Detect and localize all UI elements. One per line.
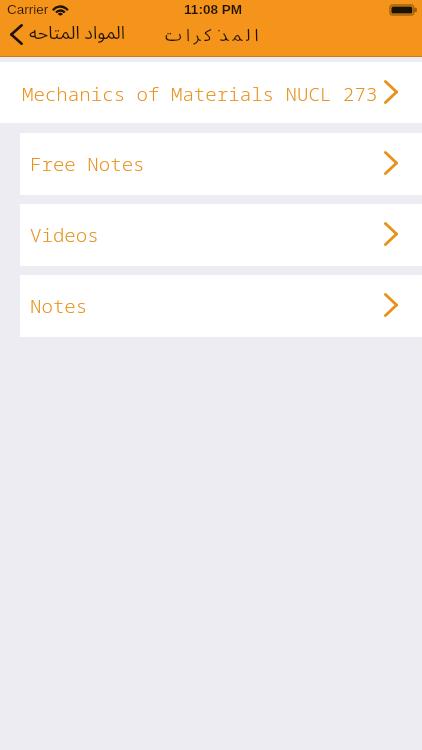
- button[interactable]: Videos: [20, 204, 422, 266]
- staticText: المواد المتاحه: [29, 14, 126, 52]
- staticText: Free Notes: [30, 151, 145, 177]
- staticText: Carrier: [7, 2, 49, 17]
- staticText: Mechanics of Materials NUCL 273: [22, 81, 378, 107]
- staticText: 11:08 PM: [2, 2, 422, 17]
- other: Back: [10, 24, 23, 45]
- other: Battery: [390, 5, 417, 15]
- staticText: Videos: [30, 222, 99, 248]
- button[interactable]: Free Notes: [20, 133, 422, 195]
- button[interactable]: Back: [0, 13, 134, 55]
- button[interactable]: Mechanics of Materials NUCL 273: [0, 62, 422, 123]
- staticText: Notes: [30, 293, 88, 319]
- button[interactable]: Notes: [20, 275, 422, 337]
- other: Wi-Fi: [52, 5, 69, 17]
- staticText: المذكرات: [161, 18, 263, 54]
